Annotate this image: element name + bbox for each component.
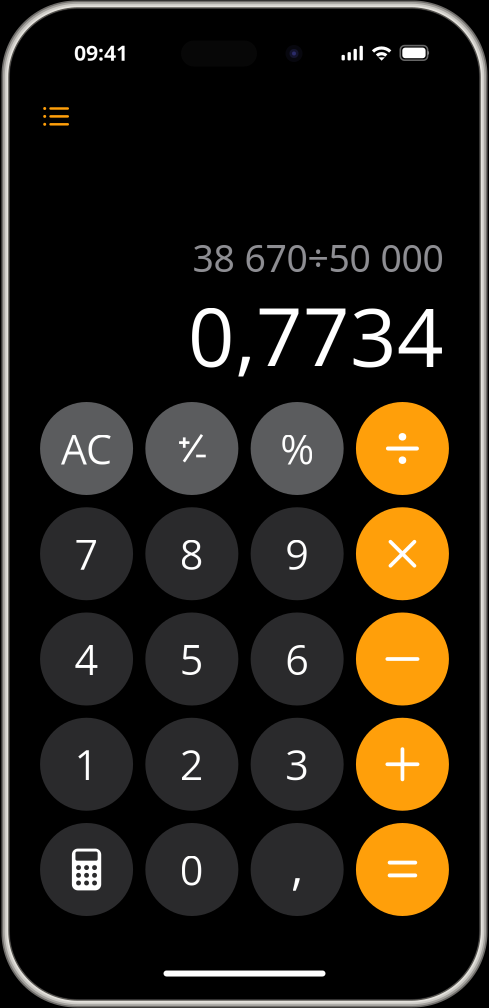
staticText: 6 — [285, 631, 309, 687]
button[interactable]: Add — [356, 718, 449, 811]
button[interactable]: 3 — [251, 718, 344, 811]
button[interactable]: 2 — [145, 718, 238, 811]
staticText: , — [291, 829, 304, 898]
staticText: 3 — [285, 736, 309, 792]
staticText: 2 — [180, 736, 204, 792]
staticText: 8 — [180, 526, 204, 582]
button[interactable]: 5 — [145, 612, 238, 705]
button[interactable]: 8 — [145, 507, 238, 600]
button[interactable]: 9 — [251, 507, 344, 600]
button[interactable]: 1 — [40, 718, 133, 811]
staticText: 5 — [180, 631, 204, 687]
button[interactable]: Equals — [356, 823, 449, 916]
button[interactable]: Subtract — [356, 612, 449, 705]
staticText: 9 — [285, 526, 309, 582]
button[interactable]: , — [251, 823, 344, 916]
button[interactable]: Plus minus — [145, 402, 238, 495]
staticText: % — [280, 420, 314, 477]
button[interactable]: History — [33, 94, 79, 138]
button[interactable]: Divide — [356, 402, 449, 495]
staticText: 0 — [180, 841, 204, 898]
staticText: 7 — [75, 526, 99, 582]
button[interactable]: 4 — [40, 612, 133, 705]
staticText: 4 — [75, 631, 99, 687]
staticText: 1 — [75, 736, 99, 792]
button[interactable]: 6 — [251, 612, 344, 705]
staticText: 09:41 — [74, 38, 128, 67]
button[interactable]: Calculator modes — [40, 823, 133, 916]
button[interactable]: Multiply — [356, 507, 449, 600]
button[interactable]: % — [251, 402, 344, 495]
staticText: 38 670÷50 000 — [192, 232, 443, 283]
staticText: 0,7734 — [188, 280, 444, 390]
button[interactable]: AC — [40, 402, 133, 495]
staticText: AC — [61, 420, 112, 477]
button[interactable]: 0 — [145, 823, 238, 916]
button[interactable]: 7 — [40, 507, 133, 600]
